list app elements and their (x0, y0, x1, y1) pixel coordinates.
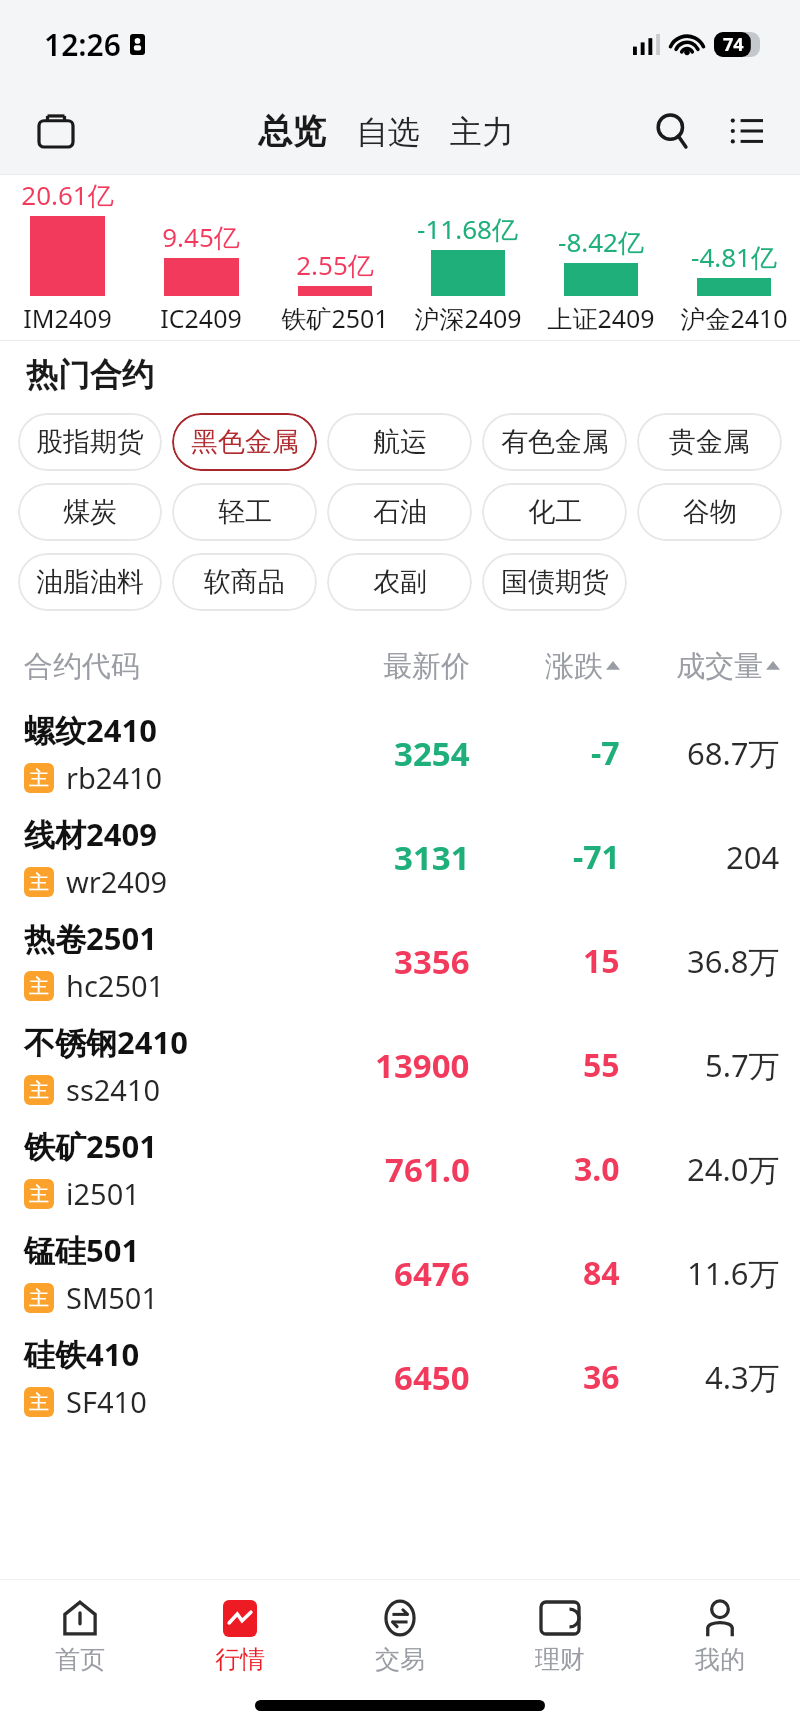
button[interactable]: 行情 (160, 1580, 320, 1692)
button[interactable]: 自选 (347, 106, 429, 158)
button[interactable]: 2.55亿 (268, 175, 401, 340)
staticText: 铁矿2501 (24, 1125, 157, 1167)
staticText: 不锈钢2410 (24, 1021, 188, 1063)
button[interactable]: 农副 (327, 553, 472, 611)
button[interactable]: -4.81亿 (667, 175, 800, 340)
staticText: 我的 (695, 1644, 745, 1675)
staticText: SM501 (66, 1278, 158, 1317)
staticText: 主 (29, 1390, 49, 1415)
button[interactable]: 化工 (482, 483, 627, 541)
button[interactable]: -11.68亿 (401, 175, 534, 340)
staticText: 主 (29, 870, 49, 895)
staticText: 油脂油料 (36, 565, 144, 599)
button[interactable]: 涨跌 (470, 648, 620, 685)
button[interactable]: 交易 (320, 1580, 480, 1692)
staticText: SF410 (66, 1382, 147, 1421)
button[interactable]: Search (644, 102, 702, 160)
button[interactable]: 石油 (327, 483, 472, 541)
button[interactable]: 轻工 (172, 483, 317, 541)
button[interactable]: 热卷2501 (0, 909, 800, 1013)
staticText: 国债期货 (501, 565, 609, 599)
staticText: 4.3万 (705, 1356, 780, 1398)
staticText: -11.68亿 (417, 211, 518, 247)
button[interactable]: 我的 (640, 1580, 800, 1692)
staticText: 3.0 (574, 1147, 620, 1191)
staticText: 化工 (528, 495, 582, 529)
button[interactable]: 软商品 (172, 553, 317, 611)
staticText: 9.45亿 (162, 219, 240, 255)
button[interactable]: 油脂油料 (18, 553, 162, 611)
staticText: -4.81亿 (691, 239, 777, 275)
staticText: 软商品 (204, 565, 285, 599)
staticText: 铁矿2501 (281, 301, 389, 335)
button[interactable]: 20.61亿 (0, 175, 134, 340)
staticText: 74 (723, 32, 744, 57)
staticText: 沪深2409 (414, 301, 522, 335)
staticText: 主力 (450, 112, 514, 152)
button[interactable]: 硅铁410 (0, 1325, 800, 1429)
staticText: 主 (29, 974, 49, 999)
staticText: 主 (29, 1078, 49, 1103)
staticText: 总览 (258, 110, 326, 153)
staticText: 主 (29, 1182, 49, 1207)
staticText: 3131 (394, 835, 470, 880)
button[interactable]: 有色金属 (482, 413, 627, 471)
staticText: wr2409 (66, 862, 168, 901)
staticText: hc2501 (66, 966, 165, 1005)
staticText: 68.7万 (687, 732, 780, 774)
button[interactable]: 煤炭 (18, 483, 162, 541)
staticText: -8.42亿 (558, 224, 644, 260)
staticText: 20.61亿 (21, 177, 114, 213)
button[interactable]: 股指期货 (18, 413, 162, 471)
button[interactable]: 贵金属 (637, 413, 782, 471)
button[interactable]: 主力 (441, 106, 523, 158)
button[interactable]: 螺纹2410 (0, 701, 800, 805)
staticText: 沪金2410 (680, 301, 788, 335)
staticText: 6476 (394, 1251, 470, 1296)
staticText: 最新价 (383, 648, 470, 685)
button[interactable]: 理财 (480, 1580, 640, 1692)
button[interactable]: 首页 (0, 1580, 160, 1692)
button[interactable]: 不锈钢2410 (0, 1013, 800, 1117)
staticText: 热门合约 (26, 355, 154, 395)
staticText: 上证2409 (547, 301, 655, 335)
button[interactable]: 铁矿2501 (0, 1117, 800, 1221)
button[interactable]: -8.42亿 (534, 175, 667, 340)
staticText: 自选 (356, 112, 420, 152)
button[interactable]: List view options (718, 102, 776, 160)
button[interactable]: 谷物 (637, 483, 782, 541)
button[interactable]: 总览 (249, 104, 335, 159)
button[interactable]: Portfolio folder (28, 103, 84, 159)
staticText: -7 (591, 731, 620, 775)
button[interactable]: 黑色金属 (172, 413, 317, 471)
staticText: 13900 (375, 1043, 470, 1088)
staticText: ss2410 (66, 1070, 161, 1109)
staticText: 3356 (394, 939, 470, 984)
staticText: IM2409 (23, 301, 112, 335)
staticText: rb2410 (66, 758, 163, 797)
staticText: 36 (583, 1355, 620, 1399)
button[interactable]: 航运 (327, 413, 472, 471)
button[interactable]: 线材2409 (0, 805, 800, 909)
staticText: 交易 (375, 1644, 425, 1675)
staticText: 涨跌 (545, 648, 603, 685)
staticText: 成交量 (676, 648, 763, 685)
staticText: 24.0万 (687, 1148, 780, 1190)
staticText: 石油 (373, 495, 427, 529)
button[interactable]: 成交量 (620, 648, 780, 685)
button[interactable]: 9.45亿 (134, 175, 268, 340)
staticText: 行情 (215, 1644, 265, 1675)
staticText: 204 (726, 836, 780, 878)
staticText: -71 (573, 835, 620, 879)
staticText: IC2409 (160, 301, 242, 335)
staticText: 合约代码 (24, 648, 140, 685)
staticText: 主 (29, 1286, 49, 1311)
staticText: 首页 (55, 1644, 105, 1675)
staticText: 有色金属 (501, 425, 609, 459)
staticText: 2.55亿 (296, 247, 374, 283)
staticText: 锰硅501 (24, 1229, 140, 1271)
button[interactable]: 国债期货 (482, 553, 627, 611)
staticText: 3254 (394, 731, 470, 776)
button[interactable]: 锰硅501 (0, 1221, 800, 1325)
staticText: 煤炭 (63, 495, 117, 529)
